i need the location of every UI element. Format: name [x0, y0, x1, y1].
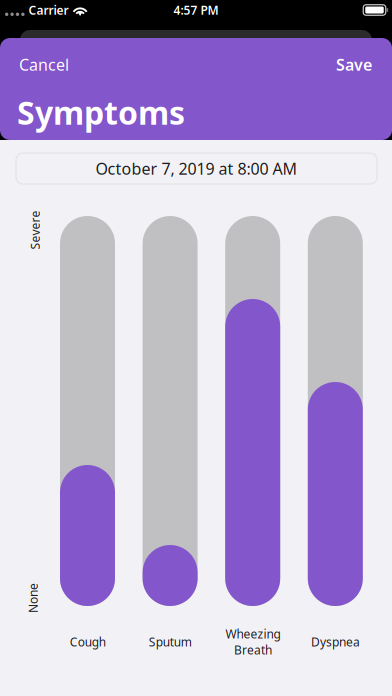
staticText: 4:57 PM	[173, 2, 218, 18]
staticText: Symptoms	[17, 91, 185, 133]
button[interactable]: October 7, 2019 at 8:00 AM	[16, 153, 377, 184]
button[interactable]	[143, 216, 198, 606]
staticText: None	[18, 590, 48, 606]
button[interactable]	[225, 216, 280, 606]
button[interactable]: Cancel	[13, 45, 75, 84]
staticText: Sputum	[149, 634, 192, 650]
staticText: Dyspnea	[311, 634, 360, 650]
staticText: October 7, 2019 at 8:00 AM	[95, 158, 297, 179]
staticText: Carrier	[29, 2, 69, 18]
staticText: Wheezing Breath	[225, 626, 280, 658]
button[interactable]	[308, 216, 363, 606]
staticText: Cancel	[19, 54, 69, 75]
button[interactable]: Save	[330, 45, 378, 84]
staticText: Severe	[15, 222, 54, 238]
staticText: Save	[336, 54, 372, 75]
button[interactable]	[60, 216, 115, 606]
staticText: Cough	[69, 634, 105, 650]
